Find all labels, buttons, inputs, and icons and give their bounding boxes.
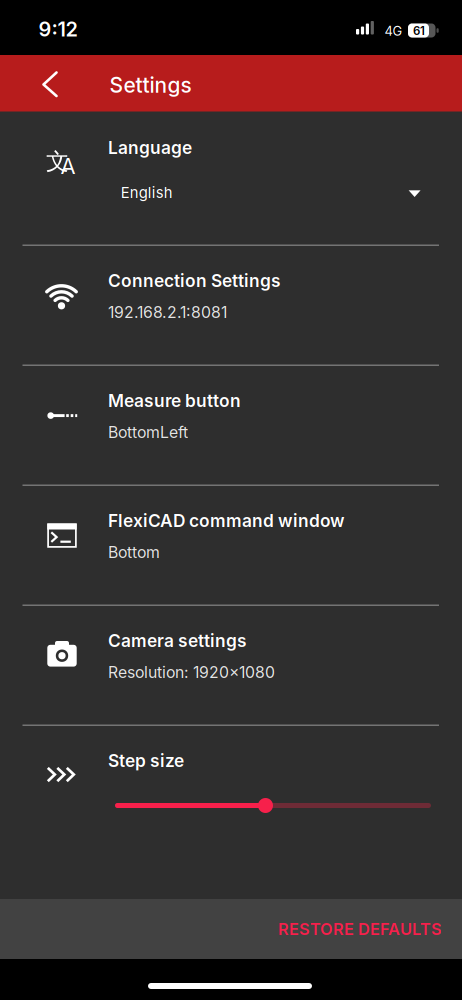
staticText: 4G	[384, 23, 402, 39]
button[interactable]: 文	[0, 111, 462, 245]
staticText: Bottom	[108, 543, 160, 562]
staticText: Camera settings	[108, 630, 247, 651]
button[interactable]: Step size slider	[107, 793, 439, 818]
staticText: Measure button	[108, 390, 241, 411]
staticText: Connection Settings	[108, 270, 281, 291]
button[interactable]: Camera settings	[0, 605, 462, 725]
staticText: 9:12	[38, 17, 77, 41]
staticText: 文	[46, 147, 69, 176]
button[interactable]: RESTORE DEFAULTS	[266, 906, 453, 952]
staticText: A	[60, 153, 75, 179]
staticText: Settings	[109, 72, 191, 98]
staticText: English	[121, 184, 173, 201]
button[interactable]: FlexiCAD command window	[0, 485, 462, 605]
staticText: FlexiCAD command window	[108, 510, 345, 531]
staticText: 192.168.2.1:8081	[108, 303, 227, 322]
staticText: Resolution: 1920x1080	[108, 663, 275, 682]
button[interactable]: Measure button	[0, 365, 462, 485]
staticText: Step size	[108, 750, 184, 771]
button[interactable]: Connection Settings	[0, 245, 462, 365]
staticText: Language	[108, 137, 192, 158]
staticText: 61	[413, 24, 425, 38]
staticText: RESTORE DEFAULTS	[278, 919, 442, 939]
button[interactable]: Back	[26, 55, 88, 111]
staticText: BottomLeft	[108, 423, 188, 442]
